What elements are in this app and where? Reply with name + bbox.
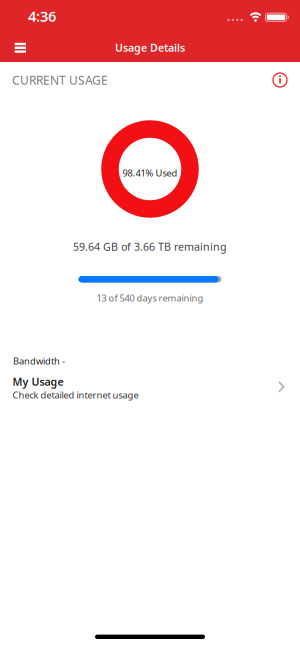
staticText: Check detailed internet usage xyxy=(12,389,138,401)
staticText: My Usage xyxy=(12,374,63,389)
staticText: 98.41% Used xyxy=(122,167,177,179)
staticText: 59.64 GB of 3.66 TB remaining xyxy=(73,239,227,254)
staticText: 13 of 540 days remaining xyxy=(96,292,203,304)
button[interactable]: My Usage xyxy=(0,367,300,401)
staticText: CURRENT USAGE xyxy=(12,72,108,88)
staticText: 4:36 xyxy=(28,6,56,26)
staticText: Usage Details xyxy=(115,40,185,55)
button[interactable]: Usage info xyxy=(272,69,288,91)
button[interactable]: Menu xyxy=(0,33,40,62)
staticText: Bandwidth - xyxy=(13,355,65,367)
